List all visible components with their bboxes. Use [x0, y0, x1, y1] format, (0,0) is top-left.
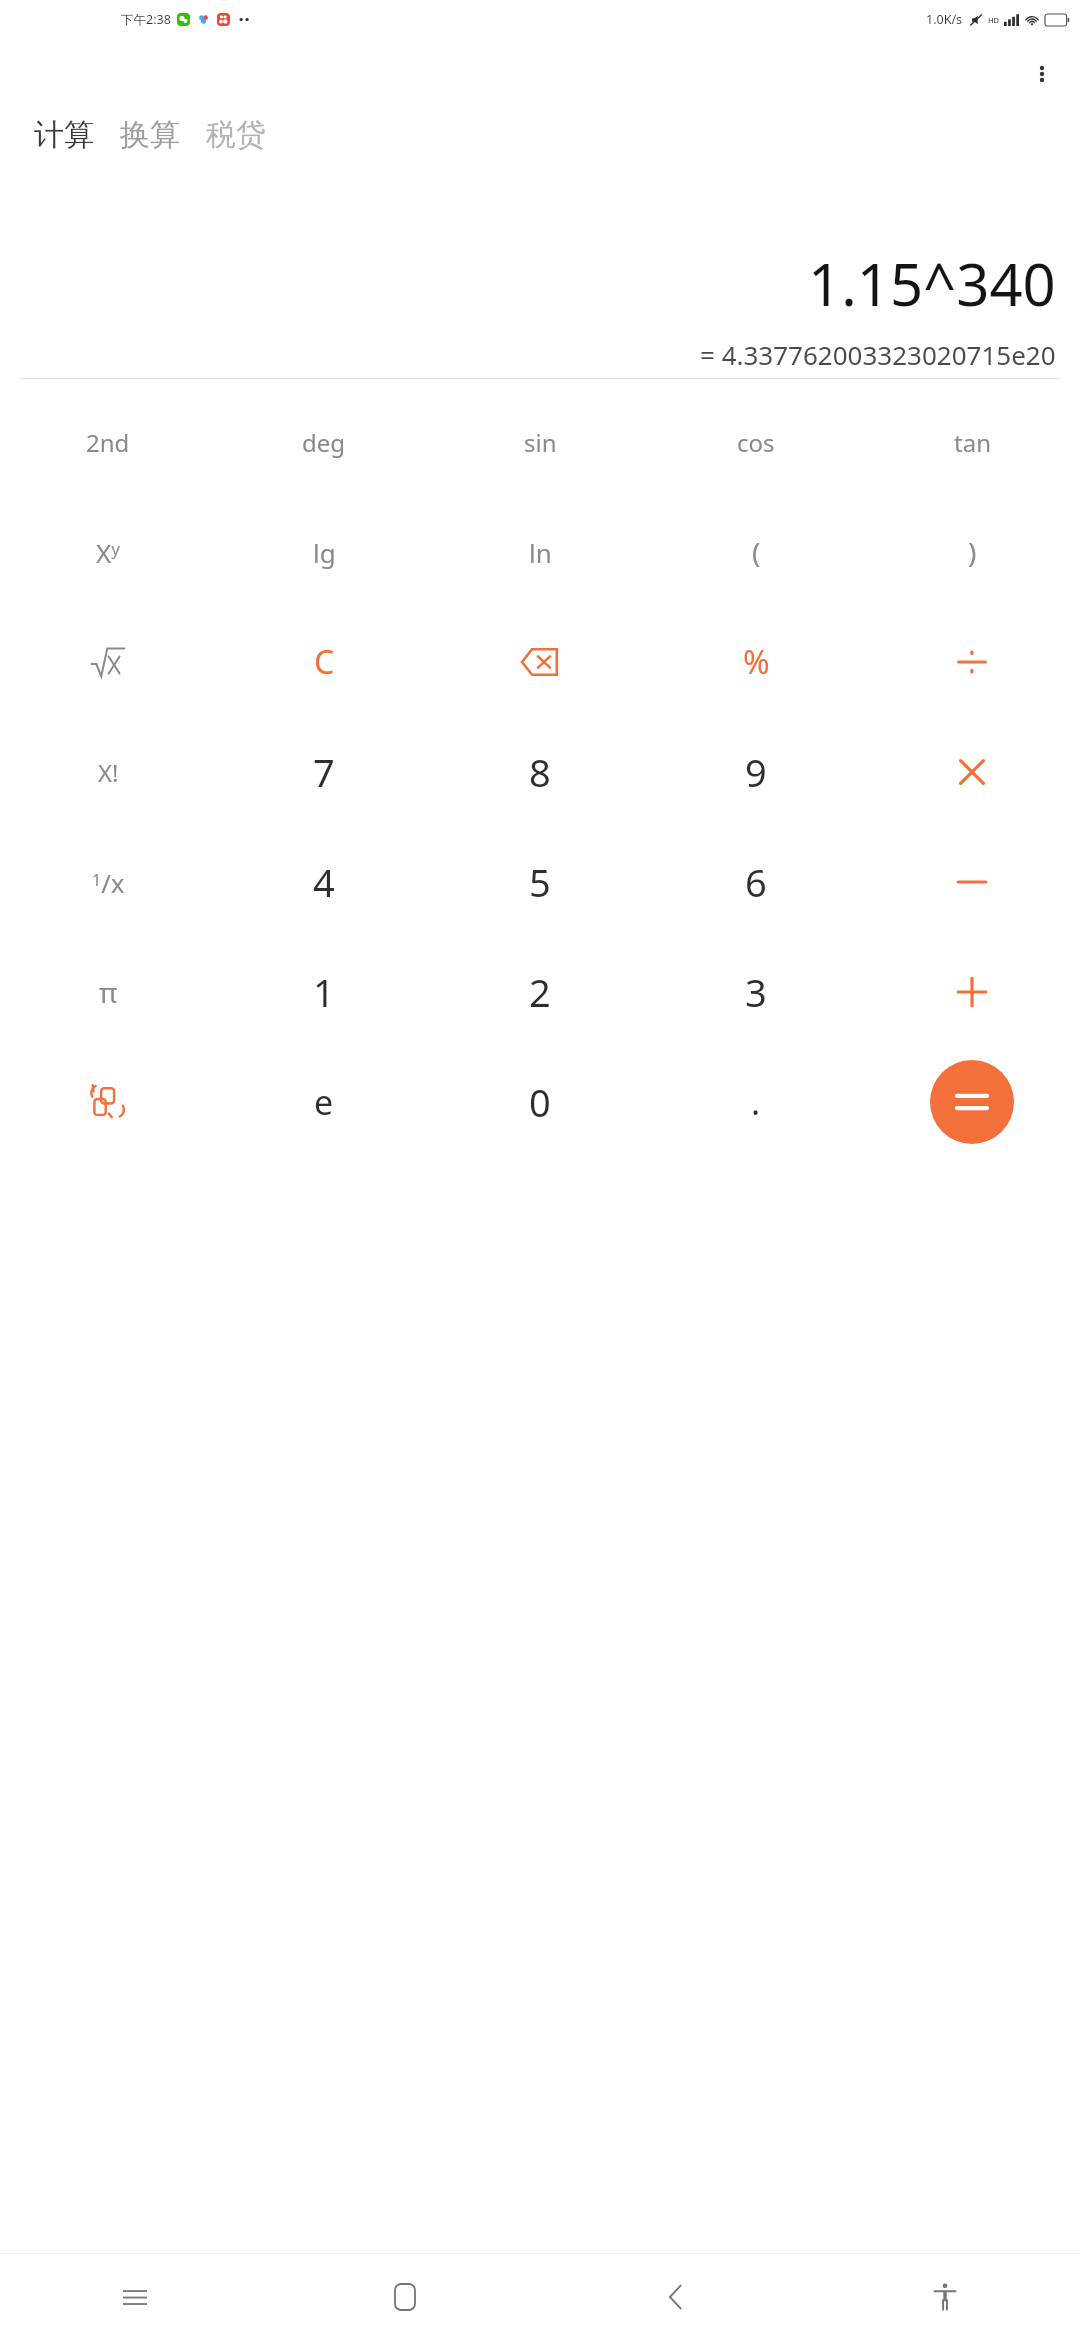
staticText: sin [524, 426, 557, 459]
button[interactable]: 1/x [92, 865, 125, 900]
button[interactable]: 2nd [86, 426, 130, 459]
button[interactable]: More options [1018, 50, 1066, 98]
staticText: 1.15^340 [808, 244, 1056, 323]
button[interactable]: 6 [745, 856, 767, 908]
button[interactable]: 换算 [116, 110, 184, 160]
staticText: 3 [745, 966, 767, 1018]
staticText: Xy [96, 535, 120, 570]
button[interactable]: lg [313, 535, 336, 570]
button[interactable]: Clear [314, 640, 335, 684]
button[interactable]: 2 [529, 966, 551, 1018]
button[interactable]: Convert [89, 1083, 127, 1121]
button[interactable]: Xy [96, 535, 120, 570]
staticText: π [99, 973, 118, 1011]
button[interactable]: Recents [0, 2254, 270, 2340]
staticText: = 4.337762003323020715e20 [700, 337, 1056, 372]
staticText: ( [752, 533, 761, 571]
staticText: cos [737, 426, 775, 459]
button[interactable]: 0 [529, 1076, 551, 1128]
button[interactable]: 9 [745, 746, 767, 798]
staticText: X! [98, 756, 119, 789]
button[interactable]: 8 [529, 746, 551, 798]
button[interactable]: X! [98, 756, 119, 789]
button[interactable]: 计算 [30, 110, 98, 160]
button[interactable]: 4 [313, 856, 335, 908]
staticText: 下午2:38 [121, 11, 171, 28]
staticText: 0 [529, 1076, 551, 1128]
staticText: 5 [529, 856, 551, 908]
button[interactable]: Multiply [957, 757, 987, 787]
staticText: ln [529, 535, 552, 570]
button[interactable]: Back [540, 2254, 810, 2340]
button[interactable]: 5 [529, 856, 551, 908]
staticText: 计算 [34, 116, 94, 154]
staticText: 换算 [120, 116, 180, 154]
button[interactable]: 3 [745, 966, 767, 1018]
button[interactable]: Percent [743, 640, 770, 684]
staticText: C [314, 640, 335, 684]
staticText: 1 [313, 966, 335, 1018]
staticText: HD [988, 15, 1000, 25]
staticText: ) [968, 533, 977, 571]
staticText: % [743, 640, 770, 684]
button[interactable]: Accessibility [810, 2254, 1080, 2340]
button[interactable]: Minus [955, 872, 989, 892]
staticText: 9 [745, 746, 767, 798]
staticText: 7 [313, 746, 335, 798]
button[interactable]: e [314, 1079, 334, 1125]
button[interactable]: 7 [313, 746, 335, 798]
button[interactable]: Home [270, 2254, 540, 2340]
button[interactable]: . [751, 1079, 761, 1125]
staticText: 1/x [92, 865, 125, 900]
staticText: lg [313, 535, 336, 570]
staticText: 4 [313, 856, 335, 908]
button[interactable]: square root [91, 645, 125, 679]
button[interactable]: cos [737, 426, 775, 459]
staticText: 6 [745, 856, 767, 908]
button[interactable]: ) [968, 533, 977, 571]
button[interactable]: π [99, 973, 118, 1011]
button[interactable]: 税贷 [202, 110, 270, 160]
button[interactable]: Plus [955, 975, 989, 1009]
button[interactable]: Equals [930, 1060, 1014, 1144]
staticText: 8 [529, 746, 551, 798]
staticText: . [751, 1079, 761, 1125]
staticText: 1.0K/s [926, 11, 963, 28]
staticText: 税贷 [206, 116, 266, 154]
button[interactable]: ( [752, 533, 761, 571]
button[interactable]: sin [524, 426, 557, 459]
button[interactable]: deg [302, 426, 346, 459]
button[interactable]: Divide [955, 645, 989, 679]
button[interactable]: ln [529, 535, 552, 570]
button[interactable]: tan [954, 426, 991, 459]
button[interactable]: Backspace [520, 642, 560, 682]
staticText: deg [302, 426, 346, 459]
staticText: 2 [529, 966, 551, 1018]
staticText: tan [954, 426, 991, 459]
staticText: 2nd [86, 426, 130, 459]
staticText: e [314, 1079, 334, 1125]
button[interactable]: 1 [313, 966, 335, 1018]
